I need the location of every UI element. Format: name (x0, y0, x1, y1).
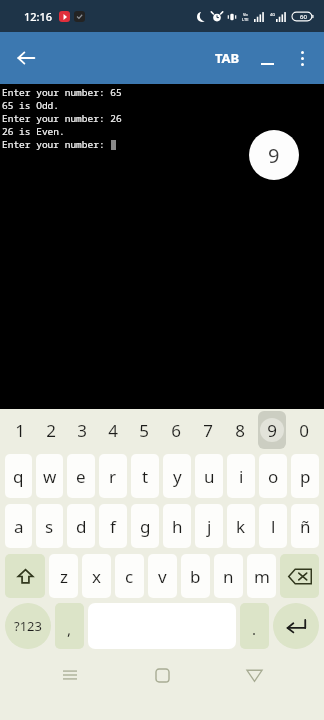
staticText: 0 (299, 419, 309, 442)
staticText: , (67, 619, 72, 639)
staticText: Enter your number: (2, 138, 111, 151)
staticText: 7 (203, 419, 213, 442)
button[interactable]: Shift (5, 554, 45, 598)
button[interactable]: 7 (194, 411, 222, 449)
button[interactable]: d (67, 504, 95, 548)
button[interactable]: 6 (162, 411, 190, 449)
button[interactable]: , (55, 603, 84, 649)
button[interactable]: e (67, 454, 95, 498)
button[interactable]: k (227, 504, 255, 548)
staticText: n (223, 565, 234, 588)
staticText: p (300, 465, 311, 488)
staticText: 9 (268, 142, 280, 169)
button[interactable]: . (240, 603, 269, 649)
button[interactable]: 4 (99, 411, 126, 449)
button[interactable]: m (247, 554, 276, 598)
button[interactable]: ?123 (5, 603, 51, 649)
staticText: l (271, 515, 276, 538)
staticText: h (172, 515, 183, 538)
staticText: w (43, 465, 57, 488)
button[interactable]: Enter (273, 603, 319, 649)
staticText: . (252, 619, 257, 639)
staticText: r (109, 465, 117, 488)
staticText: Enter your number: 65 (2, 86, 122, 99)
button[interactable]: 9 (258, 411, 286, 449)
staticText: q (13, 465, 24, 488)
button[interactable]: g (131, 504, 159, 548)
button[interactable]: Backspace (280, 554, 319, 598)
button[interactable]: Back (6, 38, 46, 78)
button[interactable]: u (195, 454, 223, 498)
button[interactable]: q (5, 454, 32, 498)
button[interactable]: f (99, 504, 127, 548)
button[interactable]: Minimize (250, 41, 284, 75)
staticText: 26 is Even. (2, 125, 65, 138)
staticText: k (236, 515, 246, 538)
staticText: x (92, 565, 101, 588)
button[interactable]: p (291, 454, 319, 498)
button[interactable]: 8 (226, 411, 254, 449)
staticText: 4G (270, 12, 276, 17)
button[interactable]: 5 (130, 411, 158, 449)
staticText: e (76, 465, 86, 488)
staticText: 1 (15, 419, 25, 442)
button[interactable]: h (163, 504, 191, 548)
button[interactable]: l (259, 504, 287, 548)
button[interactable]: y (163, 454, 191, 498)
staticText: c (125, 565, 134, 588)
button[interactable]: s (36, 504, 63, 548)
button[interactable]: 1 (6, 411, 33, 449)
button[interactable]: n (214, 554, 243, 598)
button[interactable]: TAB (209, 45, 246, 71)
button[interactable]: i (227, 454, 255, 498)
staticText: u (204, 465, 215, 488)
button[interactable]: 0 (290, 411, 318, 449)
staticText: 5 (139, 419, 149, 442)
button[interactable]: b (181, 554, 210, 598)
button[interactable]: Recents (48, 655, 92, 695)
button[interactable]: x (82, 554, 111, 598)
staticText: m (254, 565, 270, 588)
staticText: i (239, 465, 244, 488)
staticText: b (190, 565, 201, 588)
staticText: 3 (77, 419, 87, 442)
staticText: 65 is Odd. (2, 99, 60, 112)
staticText: g (140, 515, 151, 538)
button[interactable]: c (115, 554, 144, 598)
staticText: Vo (243, 12, 248, 17)
button[interactable]: 2 (37, 411, 64, 449)
staticText: 6 (171, 419, 181, 442)
staticText: a (14, 515, 24, 538)
button[interactable]: w (36, 454, 63, 498)
button[interactable]: Home (140, 655, 184, 695)
button[interactable]: Hide keyboard (232, 655, 276, 695)
staticText: o (268, 465, 279, 488)
staticText: s (45, 515, 54, 538)
staticText: 8 (235, 419, 245, 442)
staticText: Enter your number: 26 (2, 112, 122, 125)
button[interactable]: v (148, 554, 177, 598)
staticText: y (173, 465, 182, 488)
button[interactable]: z (49, 554, 78, 598)
staticText: 60 (300, 13, 307, 21)
staticText: v (158, 565, 167, 588)
staticText: LTE (242, 17, 249, 22)
button[interactable]: ñ (291, 504, 319, 548)
button[interactable]: a (5, 504, 32, 548)
staticText: d (76, 515, 87, 538)
button[interactable]: More options (284, 40, 320, 76)
staticText: z (60, 565, 68, 588)
staticText: 2 (46, 419, 56, 442)
button[interactable]: 3 (68, 411, 95, 449)
staticText: t (142, 465, 149, 488)
staticText: ?123 (14, 617, 42, 635)
button[interactable]: r (99, 454, 127, 498)
button[interactable]: j (195, 504, 223, 548)
staticText: 12:16 (24, 9, 53, 24)
staticText: j (207, 515, 212, 538)
staticText: f (110, 515, 116, 538)
staticText: 4 (108, 419, 118, 442)
button[interactable]: o (259, 454, 287, 498)
button[interactable]: t (131, 454, 159, 498)
